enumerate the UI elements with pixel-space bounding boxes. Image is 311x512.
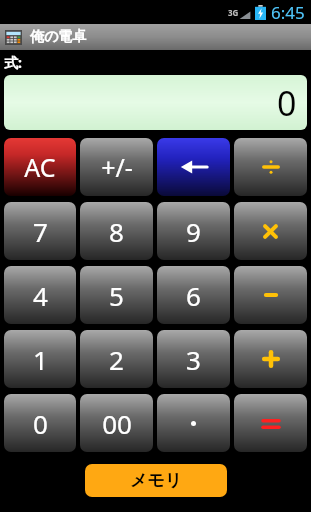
button[interactable]: 4 xyxy=(4,266,76,324)
staticText: メモリ xyxy=(130,470,183,491)
button[interactable]: 0 xyxy=(4,394,76,452)
button[interactable]: 7 xyxy=(4,202,76,260)
button[interactable]: 1 xyxy=(4,330,76,388)
button[interactable]: 3 xyxy=(157,330,230,388)
button[interactable]: 9 xyxy=(157,202,230,260)
staticText: 6:45 xyxy=(271,1,305,24)
staticText: 1 xyxy=(33,342,48,377)
button[interactable]: AC xyxy=(4,138,76,196)
staticText: 9 xyxy=(186,214,201,249)
staticText: 3 xyxy=(186,342,201,377)
button[interactable]: 6 xyxy=(157,266,230,324)
staticText: 0 xyxy=(33,406,48,441)
staticText: 8 xyxy=(109,214,124,249)
button[interactable]: Plus xyxy=(234,330,307,388)
button[interactable]: 8 xyxy=(80,202,153,260)
button[interactable]: Backspace xyxy=(157,138,230,196)
staticText: 式: xyxy=(4,53,22,72)
staticText: 6 xyxy=(186,278,201,313)
button[interactable]: メモリ xyxy=(85,464,227,497)
button[interactable]: 5 xyxy=(80,266,153,324)
staticText: 00 xyxy=(102,406,132,441)
staticText: 俺の電卓 xyxy=(30,28,87,46)
button[interactable]: 2 xyxy=(80,330,153,388)
staticText: 5 xyxy=(109,278,124,313)
button[interactable]: Divide xyxy=(234,138,307,196)
staticText: AC xyxy=(24,150,56,184)
button[interactable]: 00 xyxy=(80,394,153,452)
button[interactable]: Minus xyxy=(234,266,307,324)
staticText: +/- xyxy=(101,150,133,184)
staticText: 7 xyxy=(33,214,48,249)
staticText: 0 xyxy=(277,80,297,126)
staticText: 4 xyxy=(33,278,48,313)
staticText: 3G xyxy=(228,7,239,18)
button[interactable]: Decimal point xyxy=(157,394,230,452)
button[interactable]: Equals xyxy=(234,394,307,452)
button[interactable]: Multiply xyxy=(234,202,307,260)
button[interactable]: +/- xyxy=(80,138,153,196)
staticText: 2 xyxy=(109,342,124,377)
